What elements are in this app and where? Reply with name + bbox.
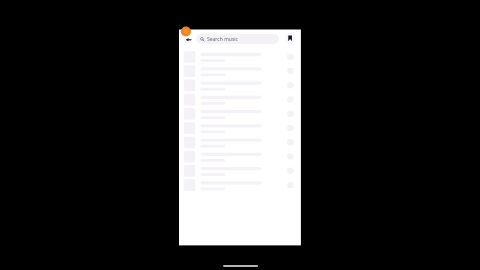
button[interactable]: Loading result 10 bbox=[179, 178, 301, 192]
button[interactable]: Saved music bbox=[285, 33, 296, 44]
button[interactable]: Search music bbox=[196, 34, 279, 44]
button[interactable]: Loading result 5 bbox=[179, 107, 301, 121]
button[interactable]: Loading result 2 bbox=[179, 64, 301, 78]
button[interactable]: Loading result 4 bbox=[179, 92, 301, 106]
button[interactable]: Loading result 6 bbox=[179, 121, 301, 135]
staticText: Search music bbox=[207, 36, 238, 43]
button[interactable]: Navigate back bbox=[183, 34, 195, 46]
button[interactable]: Loading result 8 bbox=[179, 149, 301, 163]
button[interactable]: Loading result 3 bbox=[179, 78, 301, 92]
button[interactable]: Loading result 1 bbox=[179, 50, 301, 64]
button[interactable]: Loading result 7 bbox=[179, 135, 301, 149]
button[interactable]: Loading result 9 bbox=[179, 164, 301, 178]
